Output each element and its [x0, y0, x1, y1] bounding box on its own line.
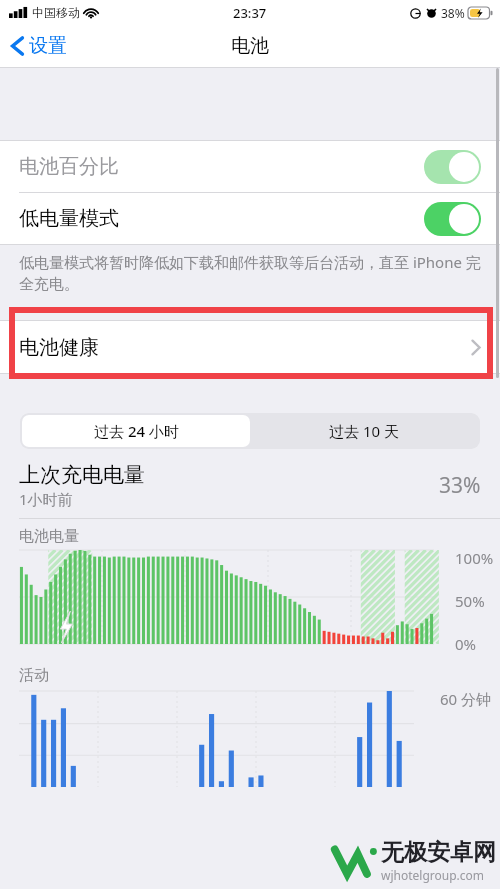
staticText: 0% — [455, 634, 477, 654]
staticText: 电池电量 — [19, 527, 79, 546]
staticText: 电池百分比 — [19, 154, 119, 179]
staticText: 电池健康 — [19, 335, 99, 360]
staticText: wjhotelgroup.com — [381, 867, 485, 883]
button[interactable]: 过去 24 小时 — [22, 415, 250, 447]
staticText: 33% — [439, 471, 481, 500]
staticText: 设置 — [29, 34, 67, 58]
staticText: 上次充电电量 — [19, 462, 145, 488]
button[interactable]: 过去 10 天 — [250, 415, 478, 447]
staticText: 23:37 — [233, 4, 267, 22]
staticText: 中国移动 — [32, 5, 80, 20]
staticText: 100% — [455, 548, 494, 568]
staticText: 过去 24 小时 — [94, 421, 179, 441]
button[interactable]: 电池百分比 — [0, 141, 500, 192]
staticText: 无极安卓网 — [381, 838, 496, 867]
staticText: 电池 — [231, 34, 269, 58]
staticText: 60 分钟 — [440, 689, 492, 709]
staticText: 过去 10 天 — [329, 421, 399, 441]
button[interactable]: 低电量模式 — [0, 193, 500, 244]
staticText: 50% — [455, 591, 485, 611]
staticText: 1小时前 — [19, 489, 73, 509]
staticText: 低电量模式 — [19, 206, 119, 231]
button[interactable]: 设置 — [0, 30, 77, 62]
staticText: 活动 — [19, 666, 49, 685]
staticText: 38% — [441, 5, 465, 21]
staticText: 低电量模式将暂时降低如下载和邮件获取等后台活动，直至 iPhone 完全充电。 — [19, 252, 482, 293]
button[interactable]: 电池健康 — [0, 321, 500, 373]
